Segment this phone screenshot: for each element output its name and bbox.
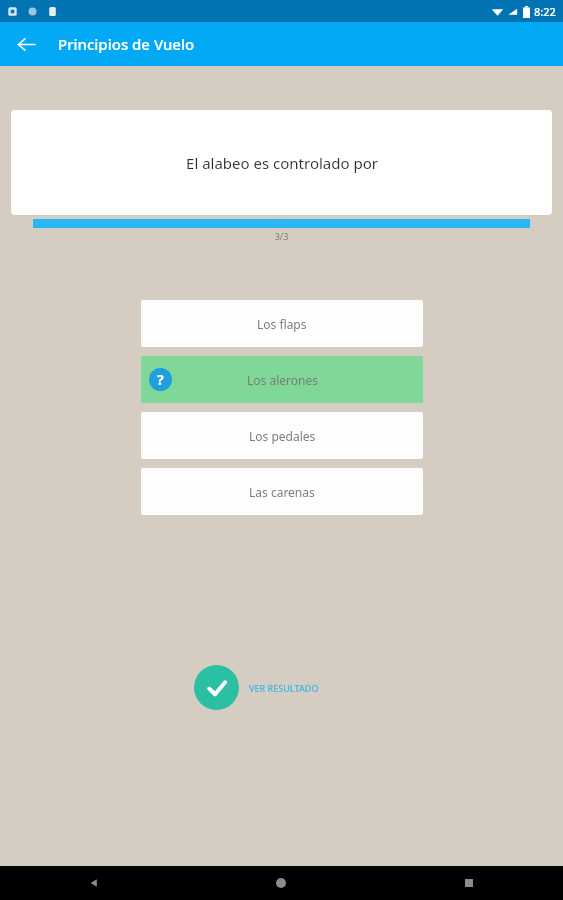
staticText: Los alerones [247,372,318,388]
staticText: VER RESULTADO [249,682,319,694]
button[interactable]: El alabeo es controlado por [11,110,552,215]
staticText: 8:22 [534,4,556,19]
button[interactable]: Los alerones [141,356,423,403]
button[interactable]: Los pedales [141,412,423,459]
button[interactable]: Back [10,28,42,60]
staticText: 3/3 [0,230,563,242]
button[interactable]: Back [77,866,111,900]
button[interactable]: VER RESULTADO [194,665,319,710]
staticText: Principios de Vuelo [58,34,195,54]
button[interactable]: Las carenas [141,468,423,515]
button[interactable]: Los flaps [141,300,423,347]
staticText: Los flaps [257,316,307,332]
staticText: Las carenas [249,484,315,500]
button[interactable]: Recents [452,866,486,900]
staticText: El alabeo es controlado por [186,153,378,173]
button[interactable]: Home [264,866,298,900]
staticText: ? [157,370,164,389]
staticText: Los pedales [249,428,316,444]
